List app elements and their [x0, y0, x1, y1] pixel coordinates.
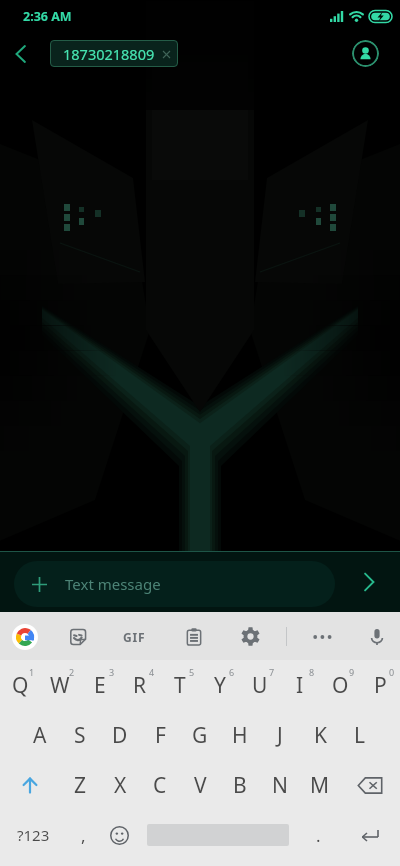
button[interactable]: Back — [0, 33, 42, 74]
staticText: P — [374, 671, 387, 700]
staticText: N — [272, 771, 288, 800]
staticText: K — [314, 721, 327, 750]
button[interactable]: X — [100, 760, 140, 810]
staticText: 6 — [229, 666, 235, 678]
staticText: U — [252, 671, 268, 700]
button[interactable]: Send — [348, 561, 390, 603]
button[interactable]: Y — [200, 660, 240, 710]
staticText: F — [155, 721, 166, 750]
button[interactable]: Settings — [228, 615, 272, 658]
staticText: . — [316, 824, 321, 847]
staticText: GIF — [123, 629, 146, 645]
staticText: J — [277, 721, 283, 750]
staticText: B — [233, 771, 247, 800]
button[interactable]: S — [60, 710, 100, 760]
staticText: 4 — [149, 666, 155, 678]
button[interactable]: Contact details — [352, 40, 379, 67]
button[interactable]: Shift — [0, 760, 60, 810]
button[interactable]: More options — [300, 615, 344, 658]
button[interactable]: Voice input — [355, 615, 399, 658]
staticText: ?123 — [17, 825, 50, 845]
staticText: A — [33, 721, 47, 750]
button[interactable]: Clipboard — [172, 615, 216, 658]
button[interactable]: ?123 — [0, 810, 66, 860]
button[interactable]: B — [220, 760, 260, 810]
staticText: R — [133, 671, 147, 700]
button[interactable]: F — [140, 710, 180, 760]
button[interactable]: C — [140, 760, 180, 810]
staticText: 7 — [269, 666, 275, 678]
button[interactable]: H — [220, 710, 260, 760]
button[interactable]: . — [300, 810, 336, 860]
staticText: 3 — [109, 666, 115, 678]
staticText: Q — [12, 671, 29, 700]
staticText: O — [332, 671, 349, 700]
staticText: G — [192, 721, 208, 750]
button[interactable]: J — [260, 710, 300, 760]
button[interactable]: GIF — [112, 615, 156, 658]
button[interactable]: A — [20, 710, 60, 760]
button[interactable]: R — [120, 660, 160, 710]
staticText: X — [114, 771, 127, 800]
button[interactable]: Google Assistant — [3, 615, 47, 658]
staticText: V — [194, 771, 207, 800]
button[interactable]: D — [100, 710, 140, 760]
button[interactable]: Emoji — [100, 810, 138, 860]
button[interactable]: N — [260, 760, 300, 810]
staticText: C — [153, 771, 167, 800]
button[interactable]: M — [300, 760, 340, 810]
staticText: W — [50, 671, 70, 700]
staticText: 8 — [309, 666, 315, 678]
button[interactable]: Stickers — [56, 615, 100, 658]
button[interactable]: Text message — [14, 561, 335, 607]
staticText: I — [296, 671, 304, 700]
staticText: D — [112, 721, 128, 750]
button[interactable]: O — [320, 660, 360, 710]
staticText: 2:36 AM — [23, 8, 72, 25]
button[interactable]: K — [300, 710, 340, 760]
button[interactable]: Backspace — [340, 760, 400, 810]
staticText: 9 — [349, 666, 355, 678]
staticText: 1 — [29, 666, 35, 678]
button[interactable] — [144, 810, 298, 860]
button[interactable]: , — [66, 810, 100, 860]
staticText: Y — [214, 671, 226, 700]
staticText: E — [94, 671, 106, 700]
button[interactable]: 18730218809 — [50, 40, 178, 67]
staticText: 0 — [389, 666, 395, 678]
staticText: Z — [74, 771, 87, 800]
button[interactable]: U — [240, 660, 280, 710]
staticText: M — [310, 771, 330, 800]
staticText: T — [174, 671, 186, 700]
staticText: Text message — [65, 574, 161, 594]
staticText: , — [81, 824, 86, 847]
button[interactable]: L — [340, 710, 380, 760]
button[interactable]: P — [360, 660, 400, 710]
button[interactable]: E — [80, 660, 120, 710]
staticText: 5 — [189, 666, 195, 678]
button[interactable]: I — [280, 660, 320, 710]
button[interactable]: G — [180, 710, 220, 760]
button[interactable]: Q — [0, 660, 40, 710]
button[interactable]: T — [160, 660, 200, 710]
staticText: S — [74, 721, 86, 750]
button[interactable]: W — [40, 660, 80, 710]
staticText: 2 — [69, 666, 75, 678]
staticText: 18730218809 — [63, 44, 155, 64]
button[interactable]: V — [180, 760, 220, 810]
staticText: L — [354, 721, 366, 750]
button[interactable]: Z — [60, 760, 100, 810]
staticText: H — [232, 721, 248, 750]
button[interactable]: Enter — [340, 810, 400, 860]
